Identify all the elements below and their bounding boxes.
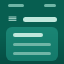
button[interactable] <box>6 27 58 61</box>
button[interactable]: Menu <box>7 14 18 25</box>
